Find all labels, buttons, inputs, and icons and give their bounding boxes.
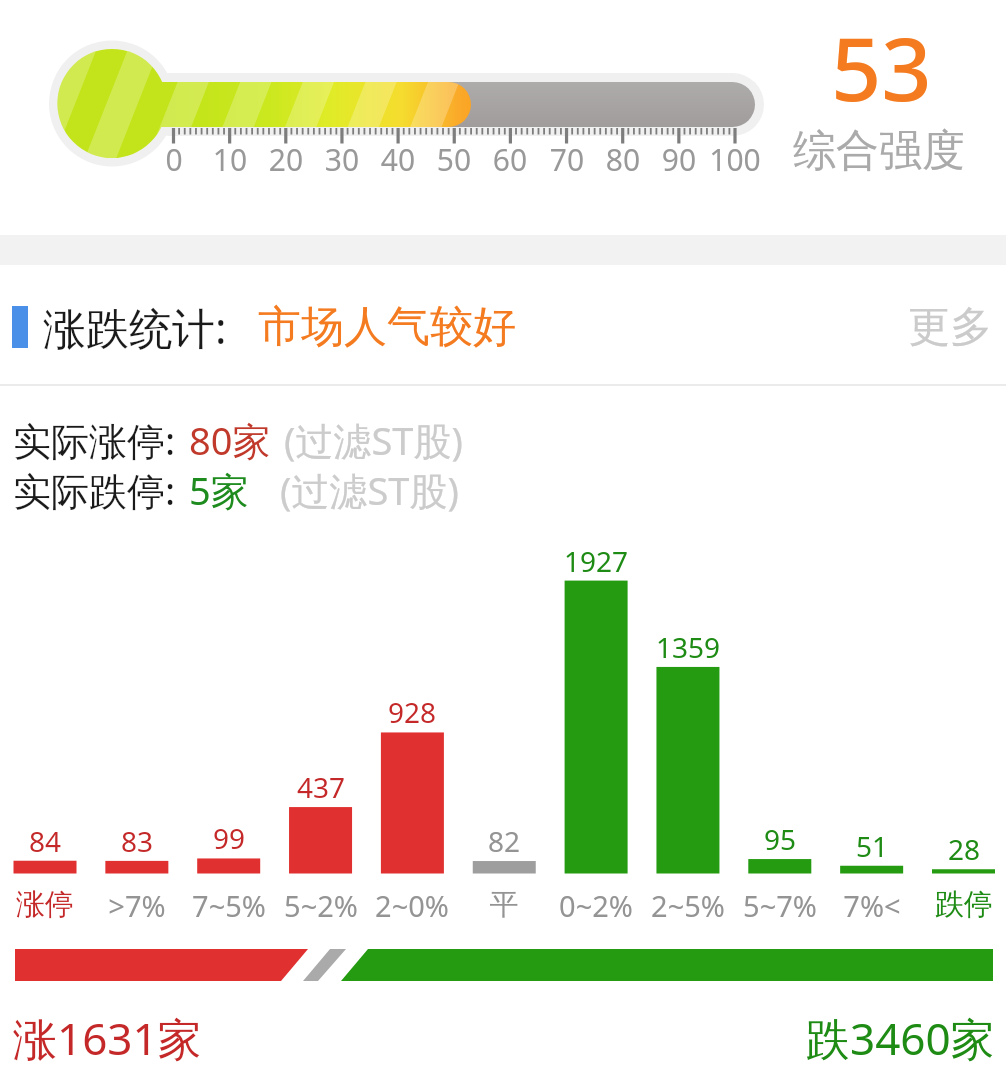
staticText: 2~5% (618, 886, 758, 925)
staticText: 10 (170, 139, 290, 180)
staticText: 40 (338, 139, 458, 180)
staticText: 7%< (802, 886, 942, 925)
staticText: 综合强度 (793, 124, 965, 178)
staticText: 20 (226, 139, 346, 180)
staticText: 涨跌统计: (43, 298, 227, 357)
staticText: 平 (434, 886, 574, 923)
staticText: 80家 (189, 414, 271, 466)
staticText: 实际跌停: (13, 464, 176, 516)
staticText: 60 (450, 139, 570, 180)
staticText: 95 (710, 820, 850, 858)
staticText: 28 (894, 830, 1006, 868)
staticText: >7% (67, 886, 207, 925)
staticText: 7~5% (159, 886, 299, 925)
staticText: 50 (394, 139, 514, 180)
staticText: (过滤ST股) (284, 414, 463, 466)
staticText: 5~2% (251, 886, 391, 925)
staticText: 99 (159, 819, 299, 857)
staticText: 涨1631家 (13, 1008, 202, 1068)
staticText: 1927 (526, 542, 666, 580)
staticText: 2~0% (342, 886, 482, 925)
button[interactable]: 涨跌统计: (0, 268, 516, 386)
staticText: 83 (67, 822, 207, 860)
staticText: 70 (507, 139, 627, 180)
staticText: 0 (114, 139, 234, 180)
staticText: 1359 (618, 628, 758, 666)
staticText: (过滤ST股) (280, 464, 459, 516)
staticText: 928 (342, 693, 482, 731)
staticText: 0~2% (526, 886, 666, 925)
staticText: 53 (831, 7, 932, 127)
staticText: 跌3460家 (806, 1008, 995, 1068)
staticText: 51 (802, 827, 942, 865)
staticText: 84 (0, 822, 115, 860)
staticText: 涨停 (0, 886, 115, 923)
staticText: 市场人气较好 (258, 300, 516, 354)
staticText: 100 (675, 139, 795, 180)
staticText: 30 (282, 139, 402, 180)
staticText: 更多 (908, 301, 992, 354)
staticText: 437 (251, 768, 391, 806)
staticText: 90 (619, 139, 739, 180)
staticText: 5~7% (710, 886, 850, 925)
staticText: 5家 (189, 464, 249, 516)
staticText: 80 (563, 139, 683, 180)
staticText: 跌停 (894, 886, 1006, 923)
staticText: 实际涨停: (13, 414, 176, 466)
staticText: 82 (434, 822, 574, 860)
button[interactable]: 更多 (894, 268, 1006, 386)
